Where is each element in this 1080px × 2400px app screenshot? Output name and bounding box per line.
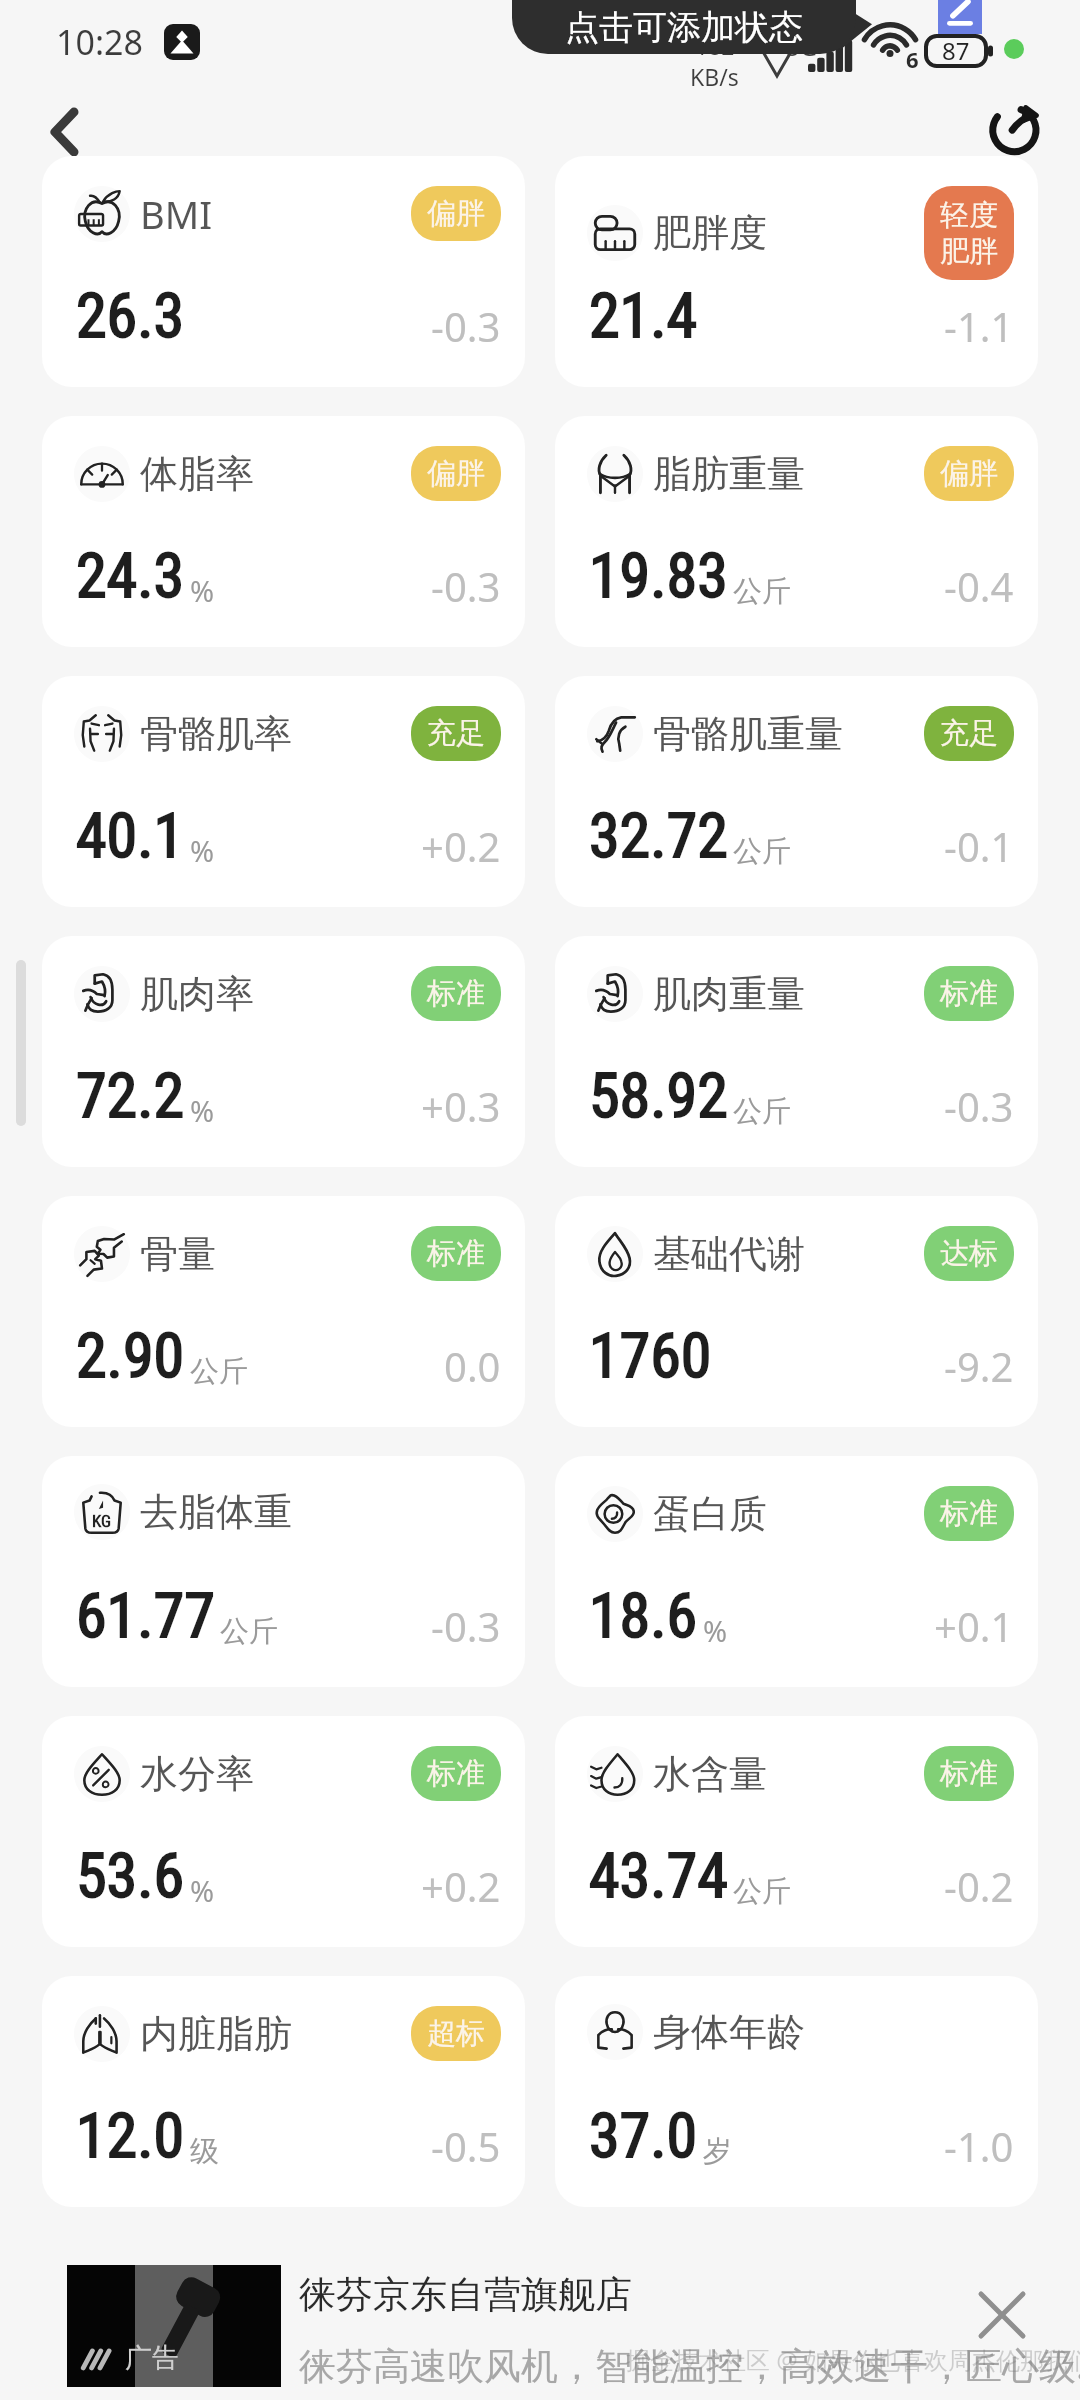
button[interactable]: 骨量 <box>42 1196 525 1427</box>
staticText: 公斤 <box>733 573 791 610</box>
staticText: -9.2 <box>944 1339 1014 1393</box>
button[interactable]: 水分率 <box>42 1716 525 1947</box>
staticText: 骨骼肌率 <box>140 710 292 758</box>
staticText: -0.2 <box>944 1859 1014 1913</box>
staticText: +0.2 <box>421 819 501 873</box>
button[interactable]: 骨骼肌率 <box>42 676 525 907</box>
staticText: % <box>190 1091 215 1130</box>
staticText: 偏胖 <box>427 455 485 492</box>
staticText: % <box>190 831 215 870</box>
staticText: % <box>190 571 215 610</box>
staticText: 骨量 <box>140 1230 216 1278</box>
staticText: 偏胖 <box>940 455 998 492</box>
staticText: 53.6 <box>76 1839 185 1912</box>
staticText: 标准 <box>427 1755 485 1792</box>
staticText: % <box>190 1871 215 1910</box>
staticText: 公斤 <box>190 1353 248 1390</box>
staticText: 偏胖 <box>427 195 485 232</box>
staticText: 充足 <box>427 715 485 752</box>
staticText: +0.2 <box>421 1859 501 1913</box>
staticText: 21.4 <box>589 279 698 352</box>
staticText: BMI <box>140 188 213 240</box>
staticText: 5G <box>786 30 818 63</box>
staticText: -0.3 <box>431 299 501 353</box>
staticText: 标准 <box>427 975 485 1012</box>
staticText: 6 <box>906 44 919 74</box>
staticText: 0.0 <box>444 1339 501 1393</box>
staticText: 标准 <box>940 1755 998 1792</box>
staticText: 标准 <box>940 975 998 1012</box>
staticText: 182 <box>695 30 735 61</box>
staticText: 公斤 <box>733 1873 791 1910</box>
staticText: 肌肉率 <box>140 970 254 1018</box>
staticText: 掘金技术社区 @ 如果你也喜欢周杰伦那我们就是好朋友 <box>626 2343 1080 2376</box>
staticText: 充足 <box>940 715 998 752</box>
staticText: 肌肉重量 <box>653 970 805 1018</box>
staticText: 基础代谢 <box>653 1230 805 1278</box>
staticText: 标准 <box>427 1235 485 1272</box>
staticText: 2.90 <box>76 1319 185 1392</box>
staticText: 级 <box>190 2133 219 2170</box>
button[interactable]: KG <box>42 1456 525 1687</box>
button[interactable]: 身体年龄 <box>555 1976 1038 2207</box>
staticText: 1760 <box>589 1319 712 1392</box>
button[interactable]: 肌肉重量 <box>555 936 1038 1167</box>
staticText: 12.0 <box>76 2099 185 2172</box>
staticText: -0.1 <box>944 819 1014 873</box>
button[interactable]: 骨骼肌重量 <box>555 676 1038 907</box>
staticText: 水含量 <box>653 1750 767 1798</box>
button[interactable]: 刷新 <box>978 90 1054 156</box>
staticText: -0.5 <box>431 2119 501 2173</box>
staticText: 公斤 <box>733 1093 791 1130</box>
staticText: +0.1 <box>934 1599 1014 1653</box>
button[interactable]: 关闭广告 <box>966 2279 1038 2351</box>
staticText: 18.6 <box>589 1579 698 1652</box>
staticText: 72.2 <box>76 1059 185 1132</box>
staticText: -1.0 <box>944 2119 1014 2173</box>
staticText: 轻度 肥胖 <box>940 197 998 269</box>
staticText: KB/s <box>690 61 739 92</box>
staticText: -0.3 <box>431 559 501 613</box>
staticText: 公斤 <box>733 833 791 870</box>
staticText: 骨骼肌重量 <box>653 710 843 758</box>
staticText: 点击可添加状态 <box>565 6 803 49</box>
staticText: -0.3 <box>431 1599 501 1653</box>
staticText: 公斤 <box>220 1613 278 1650</box>
staticText: 超标 <box>427 2015 485 2052</box>
button[interactable]: 蛋白质 <box>555 1456 1038 1687</box>
staticText: 58.92 <box>589 1059 728 1132</box>
button[interactable]: 肥胖度 <box>555 156 1038 387</box>
button[interactable]: 水含量 <box>555 1716 1038 1947</box>
staticText: 徕芬高速吹风机，智能温控，高效速干，匠心级… <box>299 2339 1080 2390</box>
button[interactable]: 脂肪重量 <box>555 416 1038 647</box>
button[interactable]: 广告 <box>0 2207 1080 2400</box>
button[interactable]: 内脏脂肪 <box>42 1976 525 2207</box>
staticText: 40.1 <box>76 799 185 872</box>
staticText: 24.3 <box>76 539 185 612</box>
staticText: 32.72 <box>589 799 728 872</box>
button[interactable]: 肌肉率 <box>42 936 525 1167</box>
staticText: 43.74 <box>589 1839 728 1912</box>
staticText: 岁 <box>703 2133 732 2170</box>
staticText: 去脂体重 <box>140 1488 292 1536</box>
staticText: 达标 <box>940 1235 998 1272</box>
staticText: 身体年龄 <box>653 2008 805 2056</box>
staticText: 广告 <box>125 2341 179 2375</box>
button[interactable]: 点击可添加状态 <box>512 0 856 54</box>
button[interactable]: BMI <box>42 156 525 387</box>
staticText: 水分率 <box>140 1750 254 1798</box>
staticText: 19.83 <box>589 539 728 612</box>
staticText: -0.4 <box>944 559 1014 613</box>
staticText: 徕芬京东自营旗舰店 <box>299 2271 632 2318</box>
staticText: 脂肪重量 <box>653 450 805 498</box>
staticText: +0.3 <box>421 1079 501 1133</box>
staticText: -1.1 <box>944 299 1014 353</box>
staticText: KG <box>92 1511 112 1531</box>
staticText: 26.3 <box>76 279 185 352</box>
staticText: 肥胖度 <box>653 209 767 257</box>
button[interactable]: 返回 <box>26 90 102 156</box>
staticText: % <box>703 1611 728 1650</box>
button[interactable]: 体脂率 <box>42 416 525 647</box>
staticText: 37.0 <box>589 2099 698 2172</box>
button[interactable]: 基础代谢 <box>555 1196 1038 1427</box>
